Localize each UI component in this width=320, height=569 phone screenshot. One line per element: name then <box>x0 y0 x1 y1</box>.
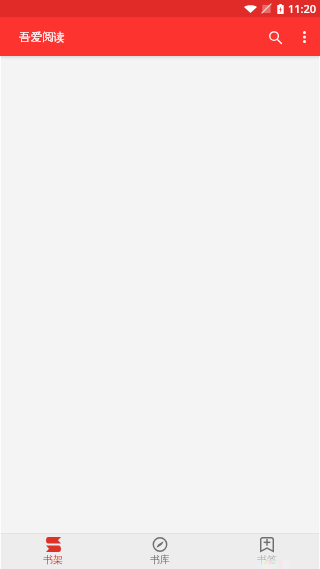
staticText: 吾爱阅读 <box>19 30 65 44</box>
staticText: 书库 <box>150 553 170 566</box>
button[interactable]: 书签 <box>213 534 320 569</box>
staticText: 11:20 <box>288 1 317 16</box>
staticText: 书架 <box>43 553 63 566</box>
button[interactable]: 书架 <box>0 534 106 569</box>
button[interactable]: Search <box>254 17 288 56</box>
button[interactable]: More options <box>288 17 320 56</box>
button[interactable]: 书库 <box>106 534 213 569</box>
staticText: 书签 <box>257 553 277 566</box>
